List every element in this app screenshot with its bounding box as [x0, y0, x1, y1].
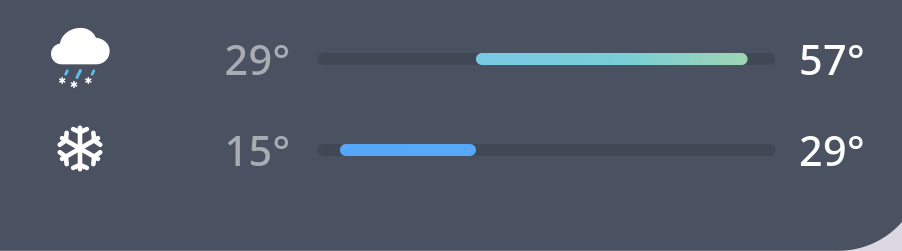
staticText: 15°	[224, 123, 290, 177]
button[interactable]: 29°	[0, 0, 902, 251]
staticText: 29°	[224, 32, 290, 86]
button[interactable]: 15°	[0, 0, 902, 251]
staticText: 57°	[799, 32, 865, 86]
staticText: 29°	[799, 123, 865, 177]
